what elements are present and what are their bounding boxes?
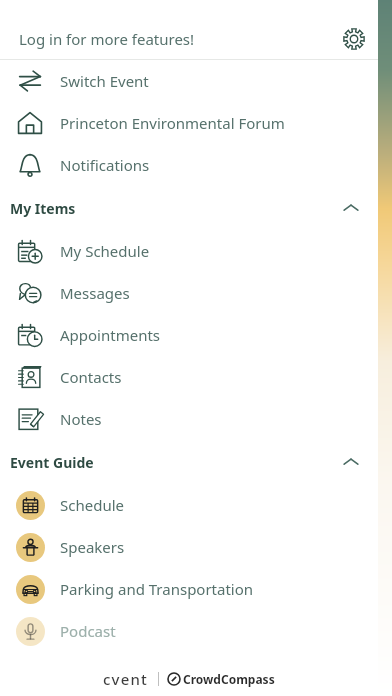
button[interactable]: Speakers: [0, 526, 378, 568]
button[interactable]: Schedule: [0, 484, 378, 526]
button[interactable]: Podcast: [0, 610, 378, 652]
staticText: Switch Event: [60, 71, 149, 91]
button[interactable]: Log in for more features!: [0, 18, 330, 59]
button[interactable]: Notifications: [0, 144, 378, 186]
staticText: Event Guide: [10, 453, 94, 472]
button[interactable]: My Items: [0, 186, 378, 230]
button[interactable]: Messages: [0, 272, 378, 314]
button[interactable]: Settings: [330, 18, 378, 59]
staticText: CrowdCompass: [183, 671, 275, 687]
staticText: Log in for more features!: [19, 29, 195, 49]
staticText: Speakers: [60, 537, 125, 557]
staticText: Schedule: [60, 495, 124, 515]
button[interactable]: Notes: [0, 398, 378, 440]
staticText: Podcast: [60, 621, 116, 641]
button[interactable]: My Schedule: [0, 230, 378, 272]
button[interactable]: Contacts: [0, 356, 378, 398]
staticText: Contacts: [60, 367, 122, 387]
staticText: Princeton Environmental Forum: [60, 113, 285, 133]
staticText: Appointments: [60, 325, 161, 345]
staticText: Messages: [60, 283, 130, 303]
staticText: cvent: [103, 669, 149, 689]
staticText: Parking and Transportation: [60, 579, 254, 599]
button[interactable]: Event Guide: [0, 440, 378, 484]
button[interactable]: Switch Event: [0, 60, 378, 102]
staticText: My Items: [10, 199, 76, 218]
button[interactable]: Princeton Environmental Forum: [0, 102, 378, 144]
button[interactable]: Appointments: [0, 314, 378, 356]
staticText: Notes: [60, 409, 102, 429]
button[interactable]: Parking and Transportation: [0, 568, 378, 610]
staticText: My Schedule: [60, 241, 150, 261]
staticText: Notifications: [60, 155, 150, 175]
